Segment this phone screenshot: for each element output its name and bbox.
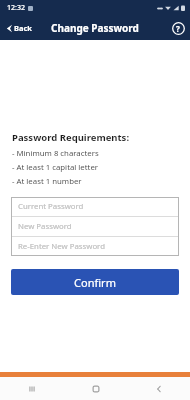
button[interactable]: Recent apps [0,377,64,400]
staticText: Current Password [18,201,84,212]
staticText: - Minimum 8 characters [12,148,99,159]
button[interactable]: Help [166,16,190,40]
button[interactable]: Current Password [11,197,179,216]
button[interactable]: Home [64,377,127,400]
staticText: Back [14,23,32,33]
button[interactable]: Re-Enter New Password [11,237,179,256]
staticText: Re-Enter New Password [18,241,105,252]
button[interactable]: New Password [11,217,179,236]
staticText: ? [176,23,180,34]
button[interactable]: Back [127,377,190,400]
staticText: - At least 1 number [12,176,82,187]
staticText: - At least 1 capital letter [12,162,99,173]
button[interactable]: Confirm [11,269,179,295]
staticText: Confirm [74,275,116,290]
staticText: New Password [18,221,72,232]
button[interactable]: Back [0,16,38,40]
staticText: Change Password [51,21,139,35]
staticText: Password Requirements: [12,131,130,144]
staticText: 12:32 [7,3,25,13]
